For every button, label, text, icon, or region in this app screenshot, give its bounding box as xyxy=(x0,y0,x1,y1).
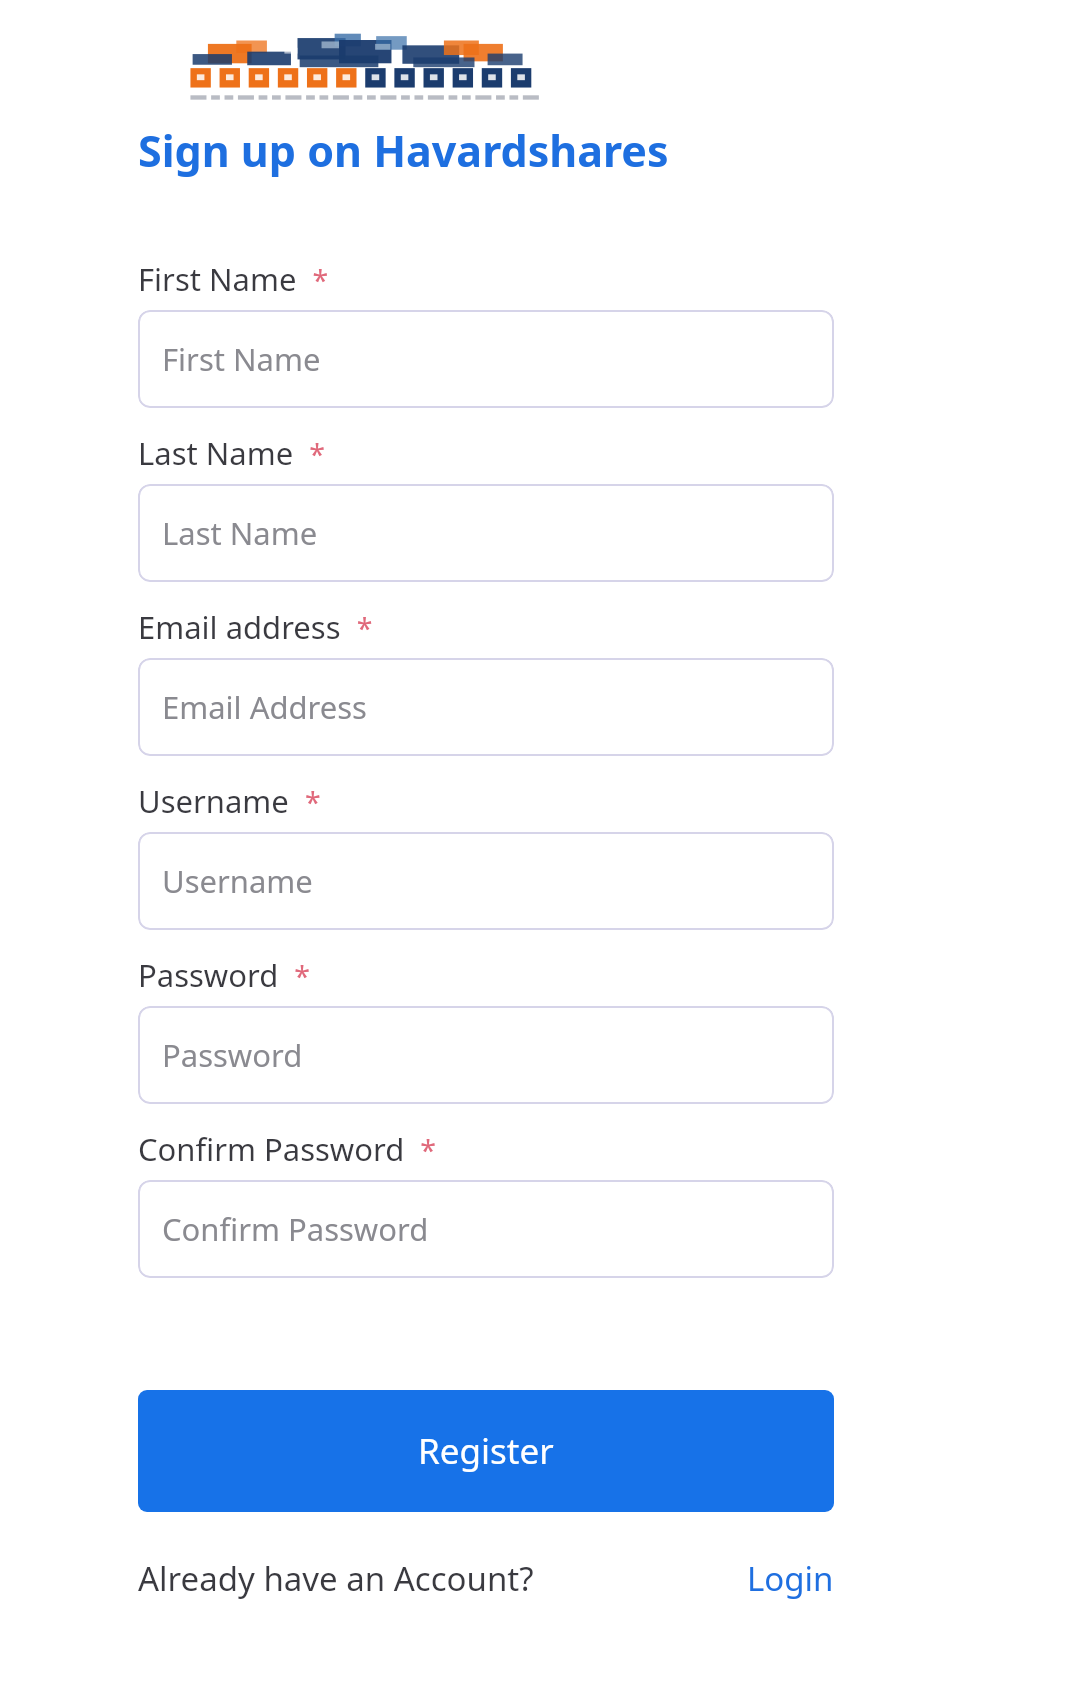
staticText: Password * xyxy=(138,954,311,996)
staticText: Confirm Password * xyxy=(138,1128,437,1170)
staticText: First Name * xyxy=(138,258,329,300)
staticText: Register xyxy=(418,1427,554,1475)
button[interactable]: First Name xyxy=(138,310,834,408)
button[interactable]: Confirm Password xyxy=(138,1180,834,1278)
button[interactable]: Register xyxy=(138,1390,834,1512)
staticText: Password xyxy=(162,1034,303,1076)
staticText: Username xyxy=(162,860,313,902)
button[interactable]: Last Name xyxy=(138,484,834,582)
button[interactable]: Login xyxy=(747,1556,834,1601)
button[interactable]: Already have an Account? xyxy=(138,1556,534,1601)
staticText: Last Name * xyxy=(138,432,325,474)
staticText: Email Address xyxy=(162,686,367,728)
staticText: First Name xyxy=(162,338,321,380)
button[interactable]: Password xyxy=(138,1006,834,1104)
staticText: Username * xyxy=(138,780,321,822)
button[interactable]: Email Address xyxy=(138,658,834,756)
staticText: Last Name xyxy=(162,512,318,554)
staticText: Sign up on Havardshares xyxy=(138,121,834,180)
staticText: Email address * xyxy=(138,606,373,648)
staticText: Confirm Password xyxy=(162,1208,429,1250)
button[interactable]: Username xyxy=(138,832,834,930)
